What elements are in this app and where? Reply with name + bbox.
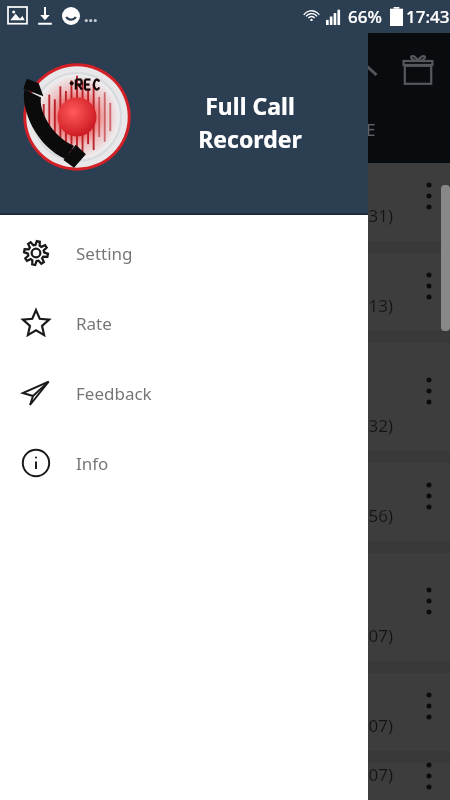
button[interactable]: :56)	[0, 463, 450, 541]
staticText: :32)	[364, 414, 394, 437]
staticText: :07)	[364, 714, 394, 737]
button[interactable]: More options	[418, 479, 440, 513]
button[interactable]: More options	[418, 584, 440, 618]
staticText: :13)	[364, 294, 394, 317]
button[interactable]: More options	[418, 269, 440, 303]
staticText: :56)	[364, 504, 394, 527]
staticText: Full Call Recorder	[150, 90, 350, 155]
staticText: E	[366, 118, 376, 141]
button[interactable]: :07)	[0, 763, 450, 800]
button[interactable]: Ads	[398, 45, 438, 85]
staticText: Setting	[76, 242, 133, 265]
button[interactable]: :07)	[0, 553, 450, 661]
button[interactable]: Setting	[0, 218, 368, 288]
staticText: 66%	[348, 5, 382, 28]
staticText: Rate	[76, 312, 112, 335]
staticText: :07)	[364, 763, 394, 786]
button[interactable]: More options	[418, 179, 440, 213]
staticText: 17:43	[406, 5, 450, 28]
button[interactable]: :07)	[0, 673, 450, 751]
button[interactable]: Feedback	[0, 358, 368, 428]
staticText: Info	[76, 452, 109, 475]
staticText: Feedback	[76, 382, 152, 405]
button[interactable]: :13)	[0, 253, 450, 331]
staticText: :31)	[364, 204, 394, 227]
button[interactable]: :31)	[0, 163, 450, 241]
button[interactable]: More options	[418, 374, 440, 408]
staticText: ...	[84, 5, 98, 27]
button[interactable]: Info	[0, 428, 368, 498]
button[interactable]: More options	[418, 689, 440, 723]
button[interactable]: Rate	[0, 288, 368, 358]
button[interactable]: :32)	[0, 343, 450, 451]
button[interactable]: More options	[418, 759, 440, 793]
staticText: :07)	[364, 624, 394, 647]
